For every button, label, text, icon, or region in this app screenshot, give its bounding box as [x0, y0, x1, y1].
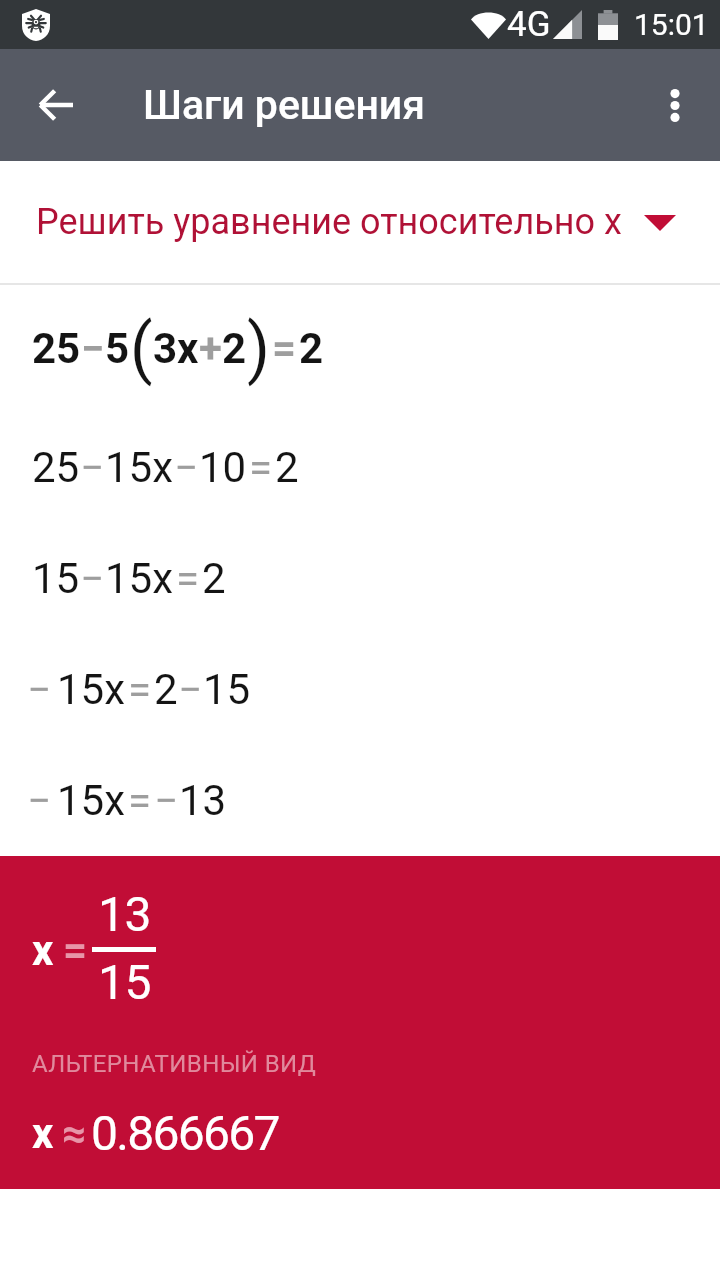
staticText: ) — [247, 310, 270, 387]
button[interactable]: x — [0, 856, 720, 1189]
staticText: − — [178, 665, 203, 714]
staticText: 15 — [203, 665, 251, 714]
staticText: 25 — [32, 443, 80, 492]
button[interactable]: 15 — [0, 523, 720, 634]
staticText: 2 — [154, 665, 178, 714]
staticText: − — [27, 776, 52, 825]
staticText: − — [154, 776, 179, 825]
staticText: = — [176, 554, 200, 603]
staticText: 15:01 — [634, 7, 709, 42]
staticText: 4G — [507, 4, 551, 45]
staticText: 2 — [275, 443, 299, 492]
staticText: 2 — [222, 324, 247, 373]
staticText: − — [27, 665, 52, 714]
staticText: Решить уравнение относительно x — [36, 201, 622, 243]
staticText: 2 — [202, 554, 226, 603]
staticText: 2 — [299, 324, 324, 373]
staticText: АЛЬТЕРНАТИВНЫЙ ВИД — [32, 1050, 317, 1078]
staticText: ≈ — [62, 1109, 87, 1158]
button[interactable]: − — [0, 634, 720, 745]
staticText: 3x — [153, 324, 199, 373]
staticText: = — [249, 443, 273, 492]
button[interactable]: Back — [0, 49, 112, 161]
staticText: − — [81, 324, 105, 373]
staticText: − — [80, 443, 105, 492]
button[interactable]: 25 — [0, 412, 720, 523]
staticText: 25 — [32, 324, 81, 373]
staticText: = — [63, 926, 88, 975]
staticText: ( — [130, 310, 153, 387]
staticText: x — [32, 926, 54, 975]
staticText: 13 — [179, 776, 227, 825]
staticText: 13 — [98, 886, 151, 942]
button[interactable]: − — [0, 745, 720, 856]
staticText: 15 — [32, 554, 80, 603]
staticText: = — [272, 324, 297, 373]
staticText: = — [128, 776, 152, 825]
staticText: 15x — [57, 665, 126, 714]
staticText: = — [128, 665, 152, 714]
staticText: 15x — [57, 776, 126, 825]
staticText: 15 — [98, 954, 151, 1010]
button[interactable]: More options — [630, 49, 720, 161]
button[interactable]: 25 — [0, 285, 720, 412]
staticText: − — [174, 443, 199, 492]
staticText: x — [32, 1109, 54, 1158]
staticText: + — [199, 324, 222, 373]
staticText: Шаги решения — [143, 81, 425, 129]
staticText: − — [80, 554, 105, 603]
button[interactable]: Решить уравнение относительно x — [0, 161, 720, 283]
staticText: 15x — [105, 554, 174, 603]
staticText: 15x — [105, 443, 174, 492]
staticText: 10 — [199, 443, 247, 492]
staticText: 5 — [105, 324, 130, 373]
staticText: 0.866667 — [91, 1105, 279, 1161]
